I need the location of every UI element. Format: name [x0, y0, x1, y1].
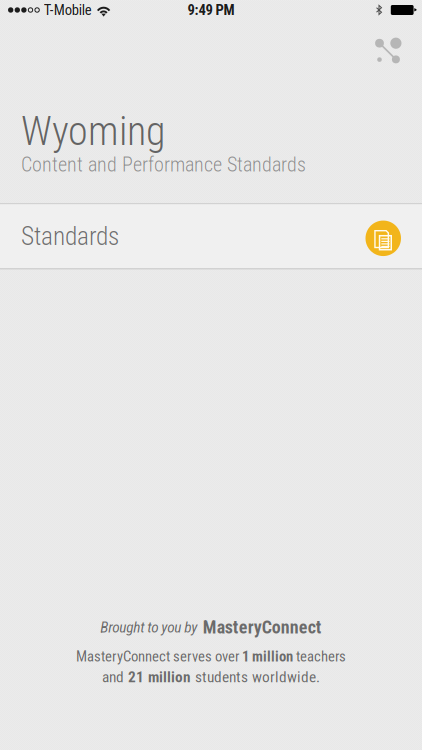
staticText: MasteryConnect serves over: [76, 648, 242, 665]
staticText: students worldwide.: [191, 668, 320, 686]
staticText: Standards: [21, 221, 119, 251]
staticText: Content and Performance Standards: [21, 153, 306, 176]
staticText: Wyoming: [21, 108, 165, 155]
staticText: MasteryConnect: [203, 617, 322, 638]
staticText: 1 million: [242, 648, 293, 665]
staticText: and: [102, 668, 128, 686]
staticText: Brought to you by: [100, 618, 197, 636]
staticText: teachers: [293, 648, 346, 665]
staticText: T-Mobile: [44, 1, 92, 19]
button[interactable]: Share: [368, 20, 422, 70]
staticText: 9:49 PM: [187, 1, 234, 19]
staticText: 21 million: [128, 668, 191, 686]
button[interactable]: Standards: [0, 204, 422, 268]
